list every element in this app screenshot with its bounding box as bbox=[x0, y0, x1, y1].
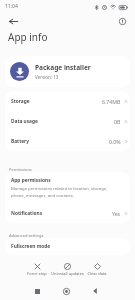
staticText: App permissions bbox=[11, 177, 51, 184]
button[interactable]: Clear data bbox=[79, 262, 115, 276]
staticText: Data usage bbox=[11, 118, 38, 125]
button[interactable]: Fullscreen mode bbox=[5, 238, 130, 255]
button[interactable]: Home bbox=[59, 284, 73, 298]
button[interactable]: Back bbox=[88, 284, 102, 298]
button[interactable]: Uninstall updates bbox=[49, 262, 85, 276]
button[interactable]: Package installer bbox=[5, 56, 130, 87]
staticText: 0.0% bbox=[109, 138, 121, 145]
staticText: 6.74MB bbox=[102, 98, 121, 105]
button[interactable]: Recents bbox=[30, 284, 44, 298]
button[interactable]: Battery bbox=[5, 131, 130, 151]
staticText: Manage permissions related to location, … bbox=[11, 186, 122, 198]
staticText: Uninstall updates bbox=[51, 271, 84, 276]
button[interactable]: Force stop bbox=[19, 262, 55, 276]
staticText: Clear data bbox=[87, 271, 107, 276]
staticText: 11:04 bbox=[5, 3, 18, 10]
button[interactable]: App permissions bbox=[5, 172, 130, 203]
staticText: Battery bbox=[11, 138, 29, 145]
button[interactable]: Notifications bbox=[5, 203, 130, 223]
staticText: Force stop bbox=[27, 271, 47, 276]
staticText: 0B bbox=[114, 118, 121, 125]
staticText: Permissions bbox=[9, 167, 32, 172]
staticText: Yes bbox=[112, 210, 121, 217]
staticText: App info bbox=[8, 30, 48, 44]
staticText: Storage bbox=[11, 98, 30, 105]
staticText: Advanced settings bbox=[9, 233, 44, 238]
button[interactable]: Help bbox=[114, 13, 131, 29]
staticText: Package installer bbox=[35, 63, 91, 72]
button[interactable]: Back bbox=[5, 13, 22, 29]
staticText: Fullscreen mode bbox=[11, 243, 51, 250]
staticText: Version: 13 bbox=[35, 74, 59, 80]
button[interactable]: Data usage bbox=[5, 111, 130, 131]
staticText: Notifications bbox=[11, 210, 43, 217]
button[interactable]: Storage bbox=[5, 91, 130, 111]
